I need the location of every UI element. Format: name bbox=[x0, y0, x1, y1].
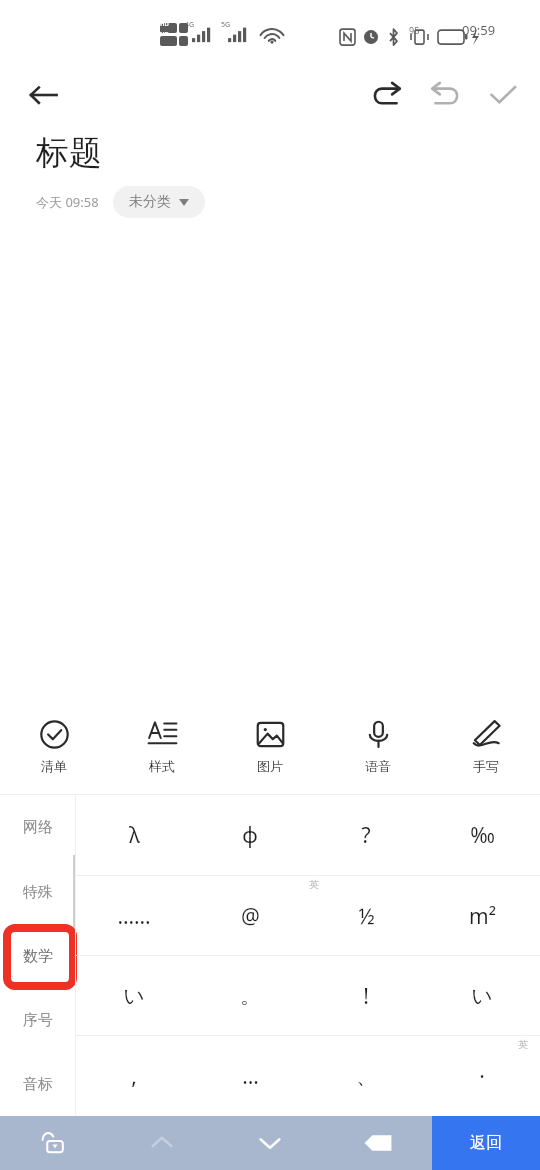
button[interactable]: 、 bbox=[308, 1036, 424, 1116]
button[interactable]: ф bbox=[192, 795, 308, 876]
button[interactable]: λ bbox=[76, 795, 192, 876]
staticText: 数学 bbox=[23, 947, 53, 966]
staticText: 、 bbox=[356, 1063, 377, 1089]
button[interactable]: 清单 bbox=[0, 700, 108, 794]
staticText: 图片 bbox=[257, 758, 283, 774]
staticText: …… bbox=[117, 902, 151, 931]
button[interactable]: 图片 bbox=[216, 700, 324, 794]
button[interactable]: 语音 bbox=[324, 700, 432, 794]
staticText: 95 bbox=[409, 24, 420, 36]
staticText: ! bbox=[363, 982, 369, 1011]
button[interactable]: @ bbox=[192, 876, 308, 956]
button[interactable]: ! bbox=[308, 956, 424, 1036]
staticText: HD bbox=[160, 20, 169, 28]
button[interactable]: … bbox=[192, 1036, 308, 1116]
button[interactable]: 。 bbox=[192, 956, 308, 1036]
staticText: 今天 09:58 bbox=[36, 193, 99, 211]
staticText: @ bbox=[241, 902, 260, 931]
button[interactable]: 音标 bbox=[0, 1052, 75, 1116]
staticText: 09:59 bbox=[462, 21, 496, 39]
staticText: 。 bbox=[240, 983, 261, 1009]
staticText: m² bbox=[469, 902, 496, 931]
button[interactable]: い bbox=[76, 956, 192, 1036]
staticText: 返回 bbox=[470, 1133, 502, 1153]
staticText: 5G bbox=[221, 20, 231, 30]
staticText: 样式 bbox=[149, 758, 175, 774]
button[interactable]: Lock bbox=[0, 1116, 108, 1170]
button[interactable]: m² bbox=[424, 876, 540, 956]
button[interactable]: 手写 bbox=[432, 700, 540, 794]
button[interactable]: 未分类 bbox=[113, 186, 205, 218]
button[interactable]: Redo bbox=[416, 66, 474, 124]
staticText: 未分类 bbox=[129, 193, 171, 211]
staticText: ‰ bbox=[470, 821, 495, 850]
button[interactable]: 返回 bbox=[432, 1116, 540, 1170]
button[interactable]: 序号 bbox=[0, 988, 75, 1052]
staticText: , bbox=[131, 1062, 137, 1091]
staticText: · bbox=[479, 1062, 485, 1091]
button[interactable]: · bbox=[424, 1036, 540, 1116]
button[interactable]: ? bbox=[308, 795, 424, 876]
button[interactable]: 数学 bbox=[0, 924, 75, 988]
button[interactable]: Undo bbox=[358, 66, 416, 124]
staticText: 清单 bbox=[41, 758, 67, 774]
staticText: 4G bbox=[185, 20, 195, 30]
staticText: 序号 bbox=[23, 1011, 53, 1030]
staticText: い bbox=[471, 983, 493, 1009]
staticText: 英 bbox=[309, 878, 319, 891]
staticText: ? bbox=[361, 821, 371, 850]
button[interactable]: い bbox=[424, 956, 540, 1036]
staticText: HD bbox=[160, 30, 169, 38]
staticText: 网络 bbox=[23, 818, 53, 837]
button[interactable]: Delete bbox=[324, 1116, 432, 1170]
button[interactable]: ½ bbox=[308, 876, 424, 956]
staticText: 标题 bbox=[36, 132, 102, 174]
button[interactable]: , bbox=[76, 1036, 192, 1116]
staticText: ф bbox=[242, 821, 258, 850]
button[interactable]: …… bbox=[76, 876, 192, 956]
staticText: 手写 bbox=[473, 758, 499, 774]
staticText: ½ bbox=[358, 902, 375, 931]
staticText: λ bbox=[129, 821, 140, 850]
button[interactable]: Next bbox=[216, 1116, 324, 1170]
button[interactable]: Back bbox=[16, 67, 72, 123]
button[interactable]: 特殊 bbox=[0, 860, 75, 924]
staticText: い bbox=[123, 983, 145, 1009]
staticText: 特殊 bbox=[23, 883, 53, 902]
staticText: … bbox=[242, 1062, 259, 1091]
button[interactable]: 网络 bbox=[0, 795, 75, 860]
button[interactable]: ‰ bbox=[424, 795, 540, 876]
button[interactable]: Done bbox=[474, 66, 532, 124]
staticText: 英 bbox=[518, 1038, 528, 1051]
staticText: 音标 bbox=[23, 1075, 53, 1094]
button[interactable]: 样式 bbox=[108, 700, 216, 794]
staticText: 语音 bbox=[365, 758, 391, 774]
